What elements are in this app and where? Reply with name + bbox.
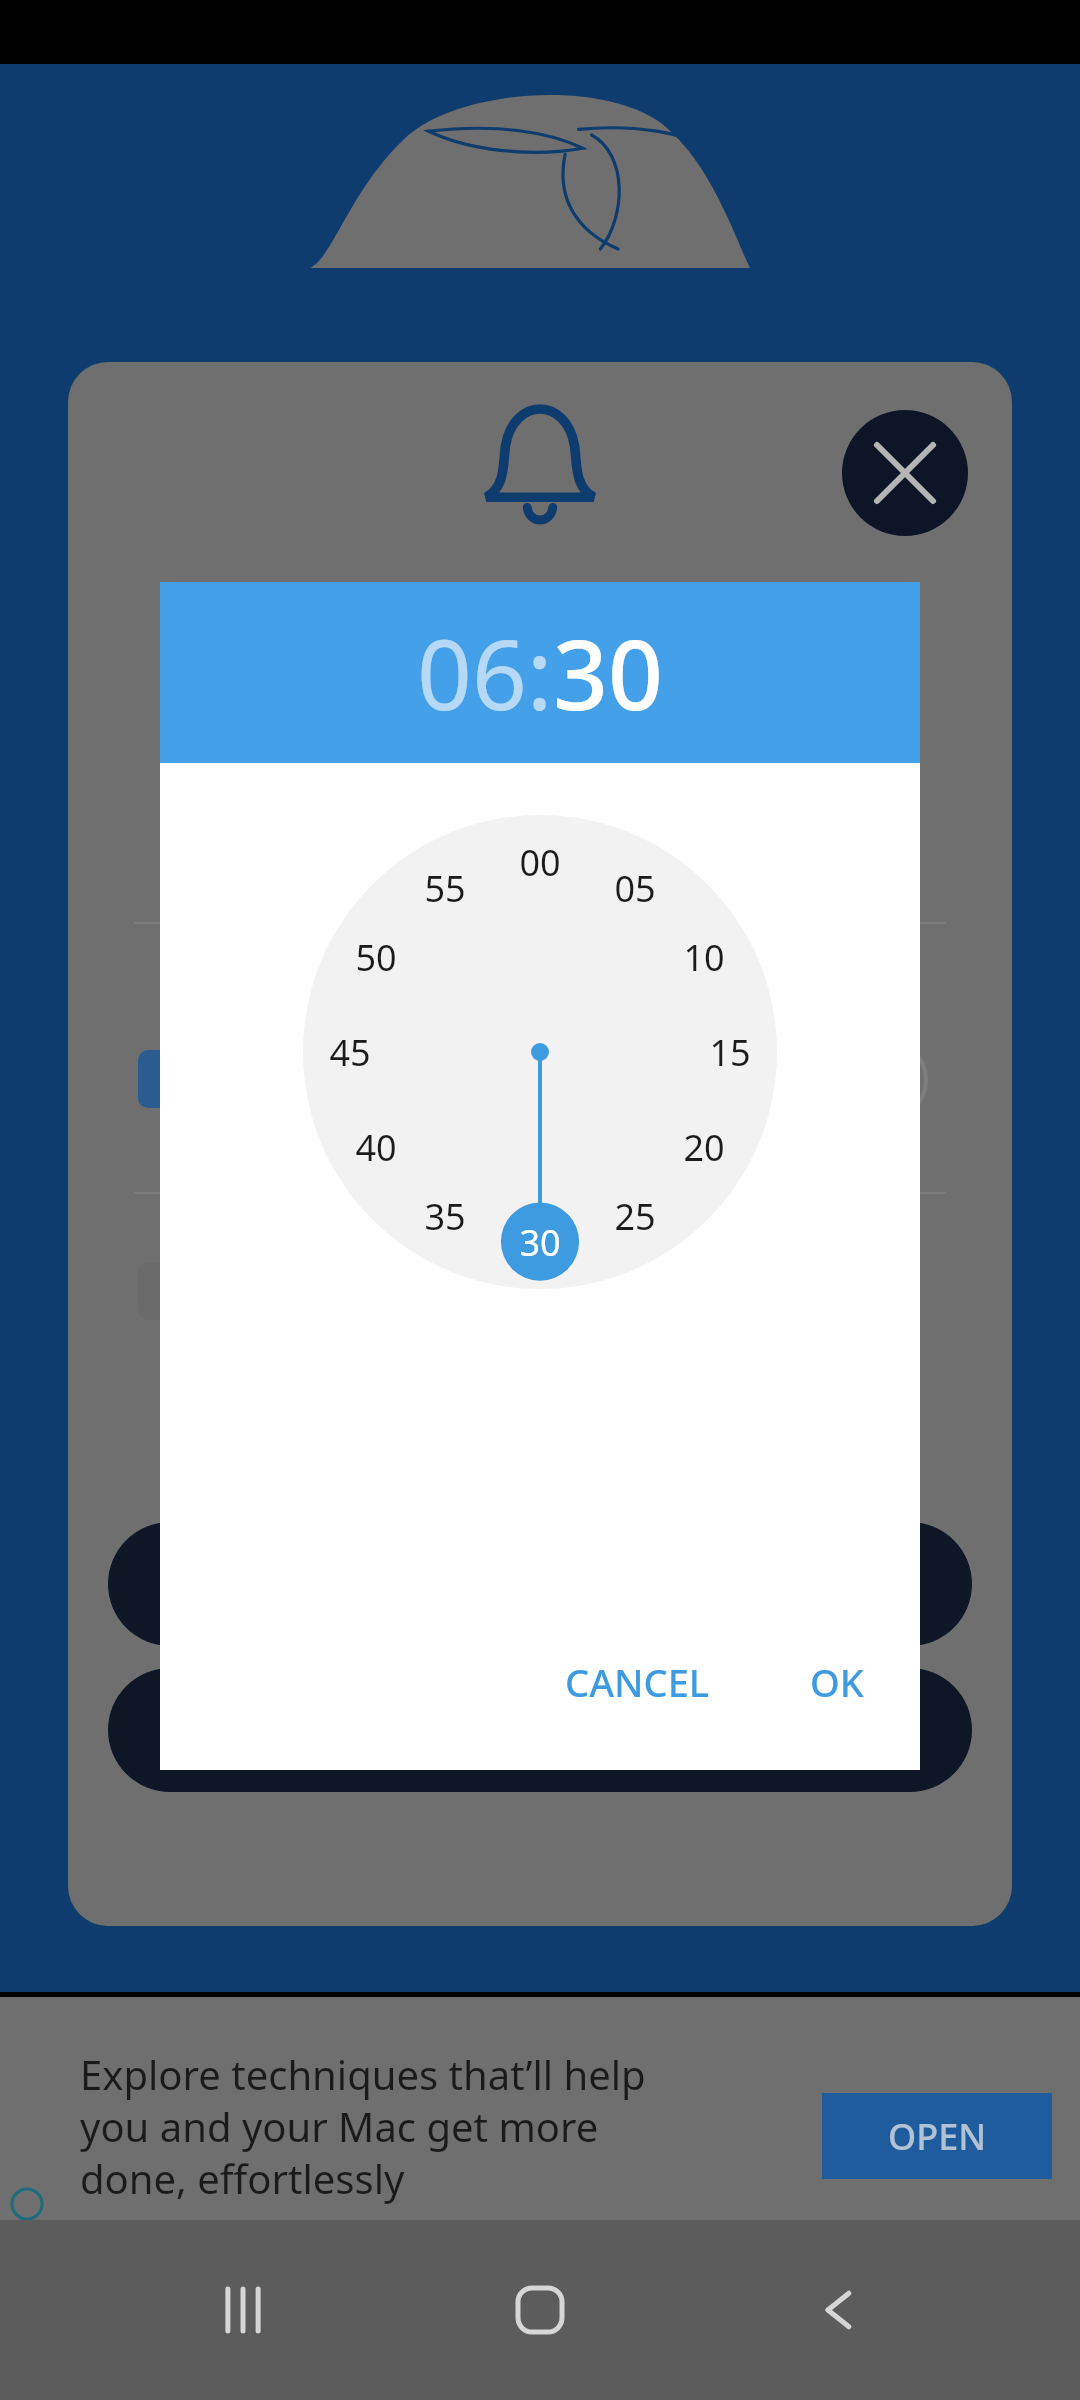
button[interactable]: 06: [160, 582, 920, 763]
staticText: 06: [417, 607, 553, 738]
button[interactable]: Back [783, 2255, 893, 2365]
staticText: CANCEL [565, 1656, 710, 1708]
staticText: 40 [355, 1123, 397, 1172]
staticText: 20 [683, 1123, 725, 1172]
staticText: 05 [614, 864, 656, 913]
staticText: OPEN [888, 2112, 987, 2161]
button[interactable]: CANCEL [543, 1638, 732, 1726]
button[interactable] [108, 1522, 972, 1646]
staticText: 45 [329, 1028, 371, 1077]
button[interactable]: OPEN [822, 2093, 1052, 2179]
staticText: 25 [614, 1192, 656, 1241]
staticText: 15 [709, 1028, 751, 1077]
button[interactable]: Explore techniques that’ll help you and … [0, 1997, 1080, 2274]
button[interactable]: Home [485, 2255, 595, 2365]
button[interactable]: OK [788, 1638, 886, 1726]
staticText: OK [810, 1656, 864, 1708]
button[interactable]: Recents [188, 2255, 298, 2365]
other: Ad info [10, 2187, 44, 2221]
staticText: 55 [424, 864, 466, 913]
staticText: 30 [519, 1218, 561, 1267]
staticText: 30 [553, 607, 663, 738]
staticText: 00 [519, 838, 561, 887]
staticText: 50 [355, 933, 397, 982]
button[interactable]: Reset PIN [108, 1668, 972, 1792]
staticText: 35 [424, 1192, 466, 1241]
button[interactable]: Close [842, 410, 968, 536]
staticText: 10 [683, 933, 725, 982]
staticText: Explore techniques that’ll help you and … [80, 2047, 646, 2206]
